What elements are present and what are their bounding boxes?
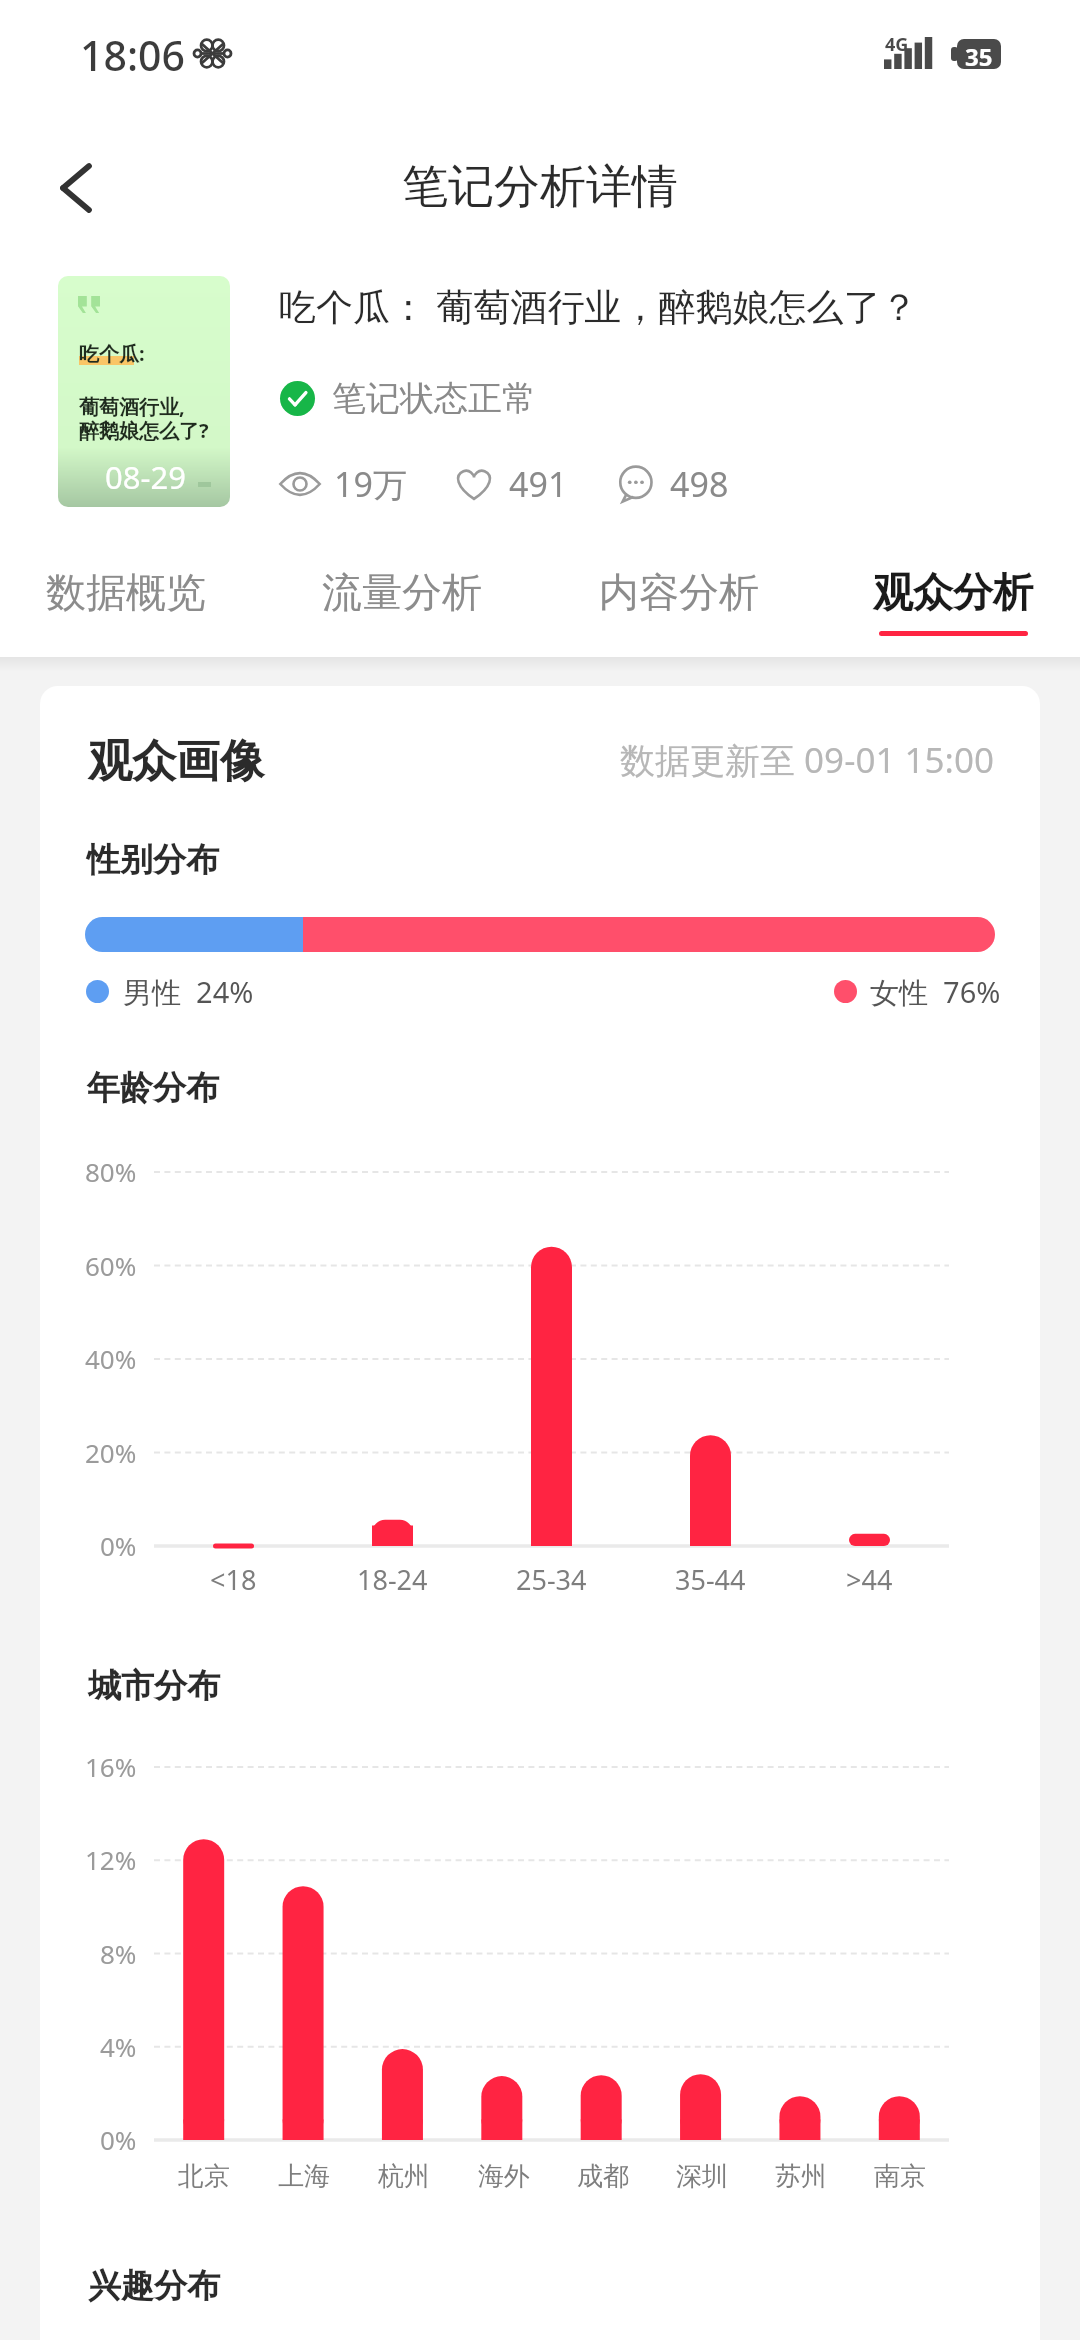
button[interactable]: 吃个瓜： 葡萄酒行业，醉鹅娘怎么了？	[279, 276, 919, 326]
staticText: 35	[965, 40, 993, 73]
button[interactable]: 笔记封面	[58, 276, 230, 507]
staticText: 4%	[100, 2029, 137, 2064]
staticText: 18-24	[357, 1561, 428, 1598]
staticText: 南京	[874, 2160, 926, 2193]
staticText: 兴趣分布	[88, 2265, 220, 2307]
button[interactable]: 内容分析	[541, 567, 817, 663]
staticText: 醉鹅娘怎么了?	[79, 417, 209, 444]
staticText: 491	[509, 461, 568, 507]
staticText: 60%	[85, 1248, 137, 1283]
button[interactable]: 流量分析	[264, 567, 540, 663]
staticText: 25-34	[516, 1561, 587, 1598]
staticText: 年龄分布	[87, 1067, 219, 1109]
staticText: 498	[670, 461, 729, 507]
staticText: 男性 24%	[123, 972, 254, 1012]
staticText: 流量分析	[322, 567, 482, 617]
staticText: 40%	[85, 1341, 137, 1376]
staticText: 0%	[100, 1528, 137, 1563]
staticText: 0%	[100, 2122, 137, 2157]
staticText: 数据更新至 09-01 15:00	[620, 736, 995, 784]
staticText: 吃个瓜:	[79, 340, 145, 367]
staticText: 海外	[478, 2160, 530, 2193]
button[interactable]: 数据概览	[0, 567, 264, 663]
staticText: 观众画像	[88, 734, 264, 789]
staticText: 08-29	[105, 456, 186, 498]
staticText: 内容分析	[599, 567, 759, 617]
staticText: 吃个瓜： 葡萄酒行业，醉鹅娘怎么了？	[279, 280, 918, 330]
staticText: 北京	[178, 2160, 230, 2193]
staticText: 35-44	[675, 1561, 746, 1598]
staticText: <18	[210, 1561, 257, 1598]
button[interactable]: Back	[51, 163, 101, 213]
staticText: 女性 76%	[870, 972, 1001, 1012]
staticText: 19万	[334, 461, 407, 507]
staticText: 16%	[85, 1749, 137, 1784]
staticText: 80%	[85, 1154, 137, 1189]
staticText: 深圳	[676, 2160, 728, 2193]
staticText: 杭州	[378, 2160, 430, 2193]
staticText: 城市分布	[88, 1665, 220, 1707]
button[interactable]: 491	[452, 461, 568, 507]
button[interactable]: 498	[613, 461, 729, 507]
staticText: 数据概览	[46, 567, 206, 617]
staticText: 8%	[100, 1936, 137, 1971]
staticText: 性别分布	[87, 839, 219, 881]
staticText: 4G	[885, 32, 909, 57]
staticText: >44	[846, 1561, 893, 1598]
staticText: 20%	[85, 1435, 137, 1470]
staticText: 苏州	[775, 2160, 827, 2193]
staticText: 观众分析	[873, 567, 1033, 617]
staticText: 上海	[278, 2160, 330, 2193]
staticText: 葡萄酒行业,	[79, 393, 185, 420]
staticText: 成都	[577, 2160, 629, 2193]
button[interactable]: 19万	[279, 461, 407, 507]
button[interactable]: 观众分析	[815, 567, 1080, 663]
staticText: 笔记状态正常	[332, 377, 536, 420]
staticText: 12%	[85, 1842, 137, 1877]
staticText: 笔记分析详情	[0, 158, 1080, 216]
staticText: 18:06	[80, 27, 185, 83]
